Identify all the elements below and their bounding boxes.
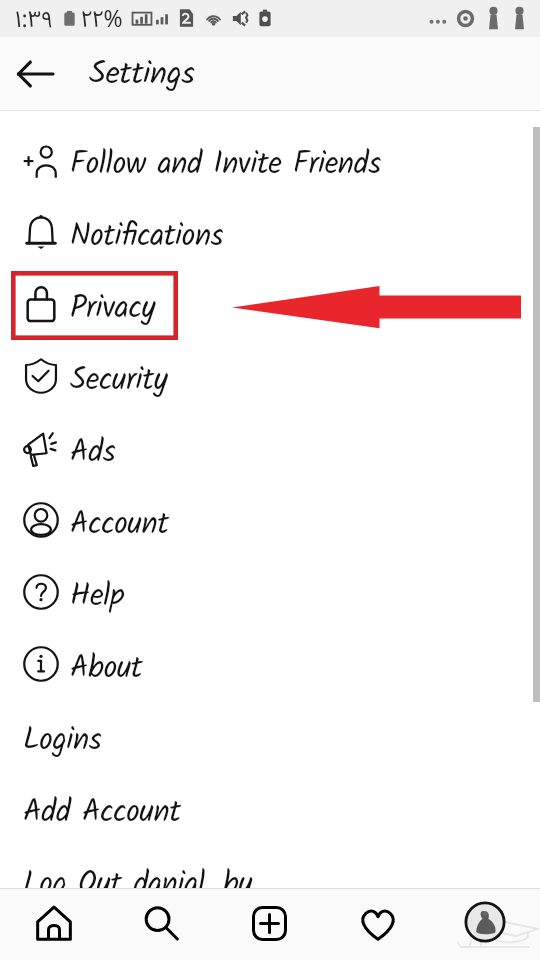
staticText: ٢٢% — [81, 2, 123, 33]
button[interactable]: Help — [0, 560, 540, 632]
button[interactable]: Log Out danial_bu — [0, 848, 540, 920]
button[interactable]: Logins — [0, 704, 540, 776]
staticText: Ads — [70, 429, 116, 478]
staticText: Account — [70, 501, 169, 550]
button[interactable]: Activity — [351, 894, 405, 954]
staticText: Help — [70, 573, 125, 622]
button[interactable]: Notifications — [0, 200, 540, 272]
staticText: About — [70, 645, 143, 694]
button[interactable]: Add Account — [0, 776, 540, 848]
button[interactable]: About — [0, 632, 540, 704]
button[interactable]: Follow and Invite Friends — [0, 128, 540, 200]
staticText: ١:٣٩ — [15, 2, 53, 33]
button[interactable]: Account — [0, 488, 540, 560]
button[interactable]: New post — [242, 893, 296, 953]
staticText: Privacy — [70, 285, 156, 334]
staticText: Follow and Invite Friends — [70, 141, 381, 190]
button[interactable]: Security — [0, 344, 540, 416]
button[interactable]: Ads — [0, 416, 540, 488]
button[interactable]: Privacy — [0, 272, 540, 344]
staticText: Log Out danial_bu — [23, 861, 253, 910]
staticText: Logins — [23, 717, 102, 766]
button[interactable]: Search — [134, 893, 188, 953]
button[interactable]: Profile — [458, 892, 512, 952]
staticText: Notifications — [70, 213, 224, 262]
button[interactable]: Back — [8, 47, 62, 101]
staticText: Add Account — [23, 789, 181, 838]
staticText: Security — [70, 357, 168, 406]
button[interactable]: Home — [27, 893, 81, 953]
staticText: Settings — [89, 49, 195, 100]
